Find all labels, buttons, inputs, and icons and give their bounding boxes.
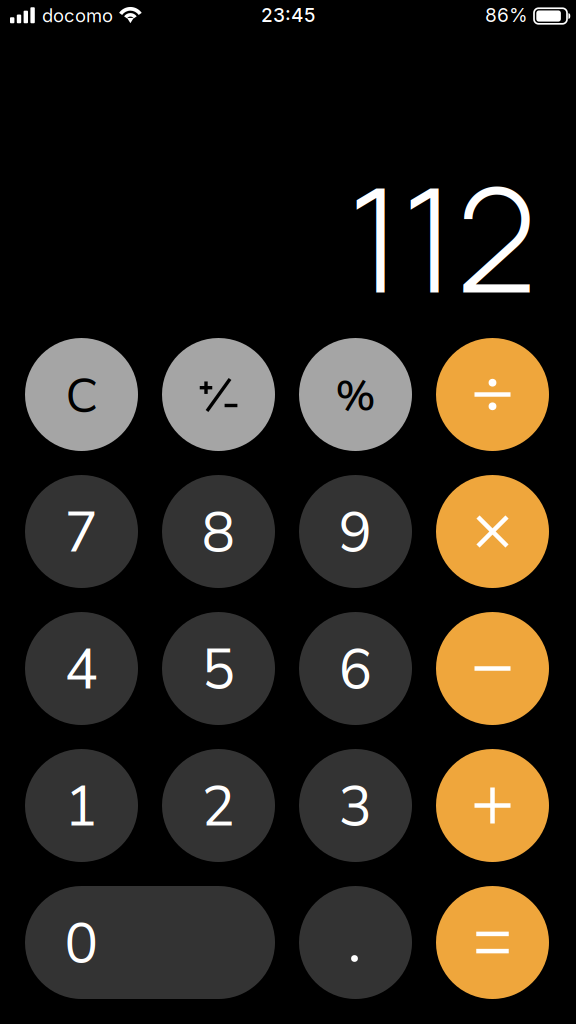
staticText: 4 xyxy=(64,632,98,708)
button[interactable]: Plus xyxy=(436,749,549,862)
button[interactable]: Decimal Point xyxy=(299,886,412,999)
button[interactable]: 7 xyxy=(25,475,138,588)
staticText: 23:45 xyxy=(261,3,315,27)
button[interactable]: Divide xyxy=(436,338,549,451)
button[interactable]: Multiply xyxy=(436,475,549,588)
button[interactable]: 9 xyxy=(299,475,412,588)
staticText: 1 xyxy=(64,769,98,845)
button[interactable]: 4 xyxy=(25,612,138,725)
button[interactable]: 1 xyxy=(25,749,138,862)
button[interactable]: 8 xyxy=(162,475,275,588)
button[interactable]: Clear xyxy=(25,338,138,451)
staticText: 0 xyxy=(64,906,98,982)
staticText: 8 xyxy=(201,495,235,571)
staticText: 7 xyxy=(64,495,98,571)
staticText: 6 xyxy=(338,632,372,708)
button[interactable]: Zero xyxy=(25,886,275,999)
button[interactable]: 6 xyxy=(299,612,412,725)
staticText: 5 xyxy=(201,632,235,708)
staticText: 86% xyxy=(485,3,528,27)
button[interactable]: Equals xyxy=(436,886,549,999)
staticText: 9 xyxy=(338,495,372,571)
staticText: 112 xyxy=(348,139,537,336)
button[interactable]: Plus Minus xyxy=(162,338,275,451)
button[interactable]: 5 xyxy=(162,612,275,725)
staticText: % xyxy=(335,367,375,426)
staticText: 3 xyxy=(338,769,372,845)
staticText: 2 xyxy=(201,769,235,845)
button[interactable]: 3 xyxy=(299,749,412,862)
staticText: docomo xyxy=(42,4,113,27)
button[interactable]: Minus xyxy=(436,612,549,725)
button[interactable]: 2 xyxy=(162,749,275,862)
button[interactable]: Percent xyxy=(299,338,412,451)
staticText: C xyxy=(65,364,97,429)
